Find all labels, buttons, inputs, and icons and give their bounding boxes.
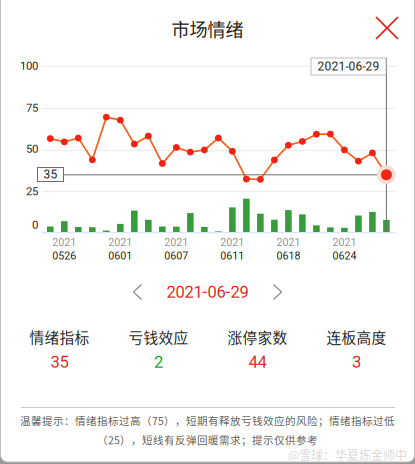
staticText: 2021-06-29 [317,59,379,74]
staticText: 100 [20,59,38,73]
staticText: 0618 [276,249,300,262]
button[interactable]: 涨停家数 [208,326,307,372]
staticText: 2 [154,352,163,372]
staticText: 亏钱效应 [128,326,188,347]
button[interactable]: Close [368,9,406,47]
staticText: 连板高度 [326,326,386,347]
staticText: 涨停家数 [227,326,287,347]
staticText: 2021 [52,236,76,248]
staticText: 2021 [108,236,132,248]
staticText: 2021 [164,236,188,248]
staticText: 0611 [220,249,244,262]
staticText: 0526 [52,249,76,262]
button[interactable]: 亏钱效应 [109,326,208,372]
staticText: 50 [26,142,38,156]
button[interactable]: Previous day [123,274,151,309]
staticText: 0624 [332,249,356,262]
staticText: 市场情绪 [171,15,243,42]
staticText: 75 [26,101,38,114]
staticText: 25 [26,185,38,198]
staticText: （25），短线有反弹回暖需求；提示仅供参考 [97,432,318,447]
staticText: 2021 [276,236,300,248]
button[interactable]: 连板高度 [307,326,406,372]
staticText: 0 [32,218,38,232]
staticText: 情绪指标 [29,326,89,347]
staticText: 2021-06-29 [166,282,248,302]
staticText: 0601 [108,249,132,262]
staticText: @雪球：华夏炼金师中 [288,446,407,463]
staticText: 44 [248,352,266,372]
staticText: 3 [352,352,361,372]
staticText: 0607 [164,249,188,262]
button[interactable]: Next day [263,274,291,309]
staticText: 35 [50,352,68,372]
staticText: 温馨提示：情绪指标过高（75），短期有释放亏钱效应的风险；情绪指标过低 [20,413,395,428]
staticText: 35 [43,167,57,182]
staticText: 2021 [220,236,244,248]
staticText: 2021 [332,236,356,248]
button[interactable]: 情绪指标 [10,326,109,372]
